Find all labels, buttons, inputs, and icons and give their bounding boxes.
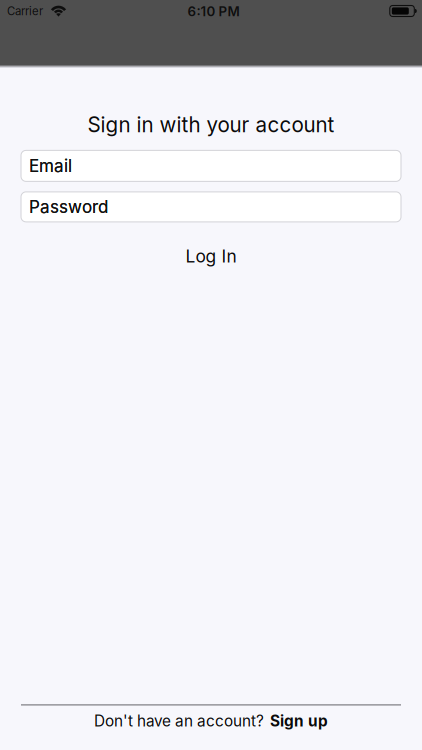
staticText: Log In — [185, 246, 236, 266]
textField[interactable]: Email — [29, 156, 401, 176]
staticText: Sign in with your account — [87, 112, 334, 137]
staticText: 6:10 PM — [187, 3, 239, 19]
button[interactable]: Log In — [175, 239, 246, 273]
staticText: Don't have an account? — [94, 712, 264, 730]
staticText: Sign up — [270, 712, 328, 730]
textField[interactable]: Password — [29, 197, 401, 217]
staticText: Carrier — [7, 4, 43, 18]
staticText: Email — [29, 156, 72, 176]
staticText: Password — [29, 197, 108, 217]
staticText: Email — [29, 156, 72, 176]
button[interactable]: Sign up — [270, 712, 328, 730]
staticText: Password — [29, 197, 108, 217]
